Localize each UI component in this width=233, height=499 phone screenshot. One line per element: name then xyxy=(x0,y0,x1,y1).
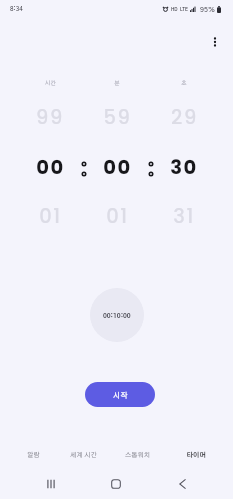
staticText: 59 xyxy=(103,104,132,131)
button[interactable] xyxy=(20,95,80,240)
button[interactable]: 스톱워치 xyxy=(110,442,164,468)
staticText: 31 xyxy=(173,203,195,230)
button[interactable]: Home xyxy=(100,467,132,499)
button[interactable]: 시작 xyxy=(85,382,155,407)
staticText: 95% xyxy=(200,6,215,13)
staticText: 01 xyxy=(106,203,129,230)
button[interactable]: 00:10:00 xyxy=(90,288,144,342)
button[interactable]: 세계 시간 xyxy=(56,442,110,468)
staticText: 타이머 xyxy=(186,452,206,459)
staticText: 시간 xyxy=(45,81,56,87)
button[interactable]: 알람 xyxy=(6,442,60,468)
staticText: 초 xyxy=(181,81,187,87)
staticText: LTE xyxy=(180,7,188,12)
staticText: 00 xyxy=(36,154,65,181)
button[interactable]: 타이머 xyxy=(169,442,223,468)
button[interactable]: More options xyxy=(201,28,229,56)
staticText: 29 xyxy=(171,104,198,131)
staticText: 세계 시간 xyxy=(70,452,97,459)
staticText: 01 xyxy=(39,203,62,230)
staticText: 99 xyxy=(36,104,64,131)
staticText: 시작 xyxy=(113,392,128,400)
button[interactable] xyxy=(87,95,147,240)
staticText: 00:10:00 xyxy=(103,313,131,320)
staticText: 알람 xyxy=(27,452,40,459)
button[interactable] xyxy=(154,95,214,240)
staticText: 30 xyxy=(170,154,198,181)
staticText: 00 xyxy=(103,154,132,181)
staticText: HD xyxy=(171,7,178,12)
staticText: 스톱워치 xyxy=(125,452,150,459)
button[interactable]: Back xyxy=(166,467,198,499)
staticText: 분 xyxy=(114,81,120,87)
staticText: 8:34 xyxy=(10,6,23,12)
button[interactable]: Recent apps xyxy=(35,467,67,499)
